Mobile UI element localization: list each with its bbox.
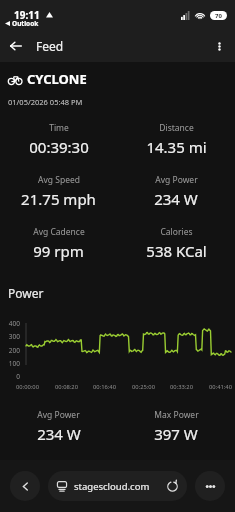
staticText: 99 rpm — [33, 241, 84, 261]
staticText: CYCLONE — [27, 70, 87, 88]
staticText: Time — [49, 122, 69, 134]
button[interactable]: CYCLONE — [8, 70, 235, 88]
staticText: 00:16:40 — [93, 383, 117, 391]
button[interactable]: More options — [203, 30, 235, 62]
staticText: 19:11 — [14, 8, 40, 22]
staticText: Avg Cadence — [33, 226, 85, 238]
staticText: 538 KCal — [146, 241, 207, 261]
staticText: Avg Power — [155, 174, 198, 186]
button[interactable]: Back — [10, 471, 40, 501]
button[interactable]: Back — [0, 30, 32, 62]
staticText: 397 W — [154, 424, 198, 444]
staticText: stagescloud.com — [74, 480, 166, 493]
staticText: 100 — [4, 359, 20, 368]
staticText: 70 — [215, 12, 222, 20]
staticText: Calories — [160, 226, 193, 238]
staticText: Outlook — [12, 19, 39, 28]
staticText: Avg Power — [37, 409, 80, 421]
staticText: 00:08:20 — [55, 383, 79, 391]
staticText: 01/05/2026 05:48 PM — [8, 97, 83, 107]
staticText: 234 W — [37, 424, 81, 444]
staticText: 0 — [4, 372, 20, 381]
staticText: 00:39:30 — [29, 137, 89, 157]
staticText: 200 — [4, 346, 20, 355]
button[interactable]: More options — [195, 471, 225, 501]
staticText: 300 — [4, 332, 20, 341]
button[interactable]: stagescloud.com — [48, 471, 187, 501]
staticText: 21.75 mph — [21, 189, 96, 209]
staticText: Power — [8, 285, 44, 301]
staticText: Feed — [36, 38, 64, 54]
staticText: Max Power — [154, 409, 199, 421]
staticText: 00:00:00 — [16, 383, 40, 391]
staticText: 234 W — [154, 189, 198, 209]
staticText: 00:25:00 — [132, 383, 156, 391]
staticText: 00:41:40 — [209, 383, 233, 391]
staticText: 14.35 mi — [146, 137, 207, 157]
staticText: 400 — [4, 319, 20, 328]
staticText: 00:33:20 — [170, 383, 194, 391]
staticText: Distance — [159, 122, 194, 134]
staticText: Avg Speed — [38, 174, 80, 186]
